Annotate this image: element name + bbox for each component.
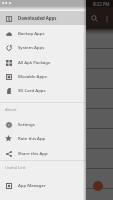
button[interactable] [0, 129, 113, 148]
staticText: System Apps [18, 44, 45, 50]
staticText: SD Card Apps [18, 87, 46, 93]
button[interactable]: Movable Apps [0, 69, 86, 83]
staticText: Useful Link [5, 165, 26, 170]
button[interactable]: App Manager [0, 178, 86, 192]
staticText: 8:22 PM [93, 1, 110, 7]
button[interactable]: Downloaded Apps [0, 11, 86, 25]
button[interactable] [0, 189, 113, 200]
button[interactable]: Settings [0, 117, 86, 131]
button[interactable] [0, 109, 113, 128]
button[interactable]: Share this App [0, 146, 86, 160]
button[interactable]: Add [93, 181, 103, 191]
button[interactable]: SD Card Apps [0, 83, 86, 97]
staticText: Downloaded Apps [18, 15, 57, 21]
button[interactable] [0, 29, 113, 48]
button[interactable] [0, 89, 113, 108]
staticText: Share this App [18, 150, 48, 156]
staticText: Rate this App [18, 135, 46, 141]
button[interactable]: More options [101, 13, 112, 24]
button[interactable] [0, 169, 113, 188]
staticText: All Apk Package [18, 59, 51, 65]
staticText: App Manager [18, 182, 46, 188]
staticText: Settings [18, 121, 35, 127]
button[interactable] [0, 49, 113, 68]
staticText: Movable Apps [18, 73, 47, 79]
button[interactable] [0, 149, 113, 168]
button[interactable] [0, 69, 113, 88]
staticText: About [5, 107, 17, 112]
button[interactable]: Backup Apps [0, 26, 86, 40]
button[interactable]: Rate this App [0, 131, 86, 145]
staticText: Backup Apps [18, 30, 45, 36]
button[interactable]: Search [88, 12, 101, 25]
button[interactable]: System Apps [0, 40, 86, 54]
button[interactable]: All Apk Package [0, 55, 86, 69]
